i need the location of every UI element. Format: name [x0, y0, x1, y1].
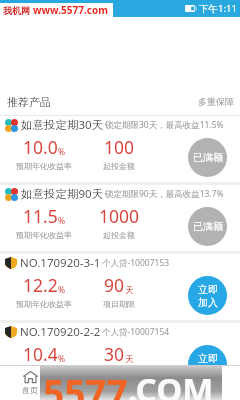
staticText: 天 — [125, 285, 134, 296]
staticText: 我的 — [202, 385, 218, 395]
staticText: 加入 — [198, 296, 218, 309]
staticText: 推荐产品 — [7, 95, 51, 109]
staticText: 发现 — [142, 385, 158, 395]
staticText: 如意投定期30天 — [21, 117, 104, 133]
staticText: 已满额 — [193, 151, 223, 164]
staticText: 10.4 — [23, 342, 58, 366]
staticText: 预期年化收益率 — [16, 368, 72, 378]
staticText: 个人贷-10007154 — [102, 326, 170, 338]
staticText: 100 — [104, 135, 135, 159]
staticText: 天 — [125, 354, 134, 365]
staticText: 预期年化收益率 — [16, 299, 72, 309]
button[interactable]: 立即加入 — [188, 345, 227, 384]
staticText: 项目期限 — [103, 299, 135, 309]
staticText: 锁定期限30天，最高收益11.5% — [105, 119, 224, 131]
staticText: www.5577.com — [33, 3, 108, 17]
staticText: 我机网 — [3, 5, 30, 16]
staticText: 锁定期限90天，最高收益13.7% — [105, 188, 224, 200]
staticText: 10.0 — [23, 135, 58, 159]
button[interactable]: 立即加入 — [188, 276, 227, 315]
staticText: NO.170920-3-1 — [20, 255, 101, 271]
staticText: % — [58, 146, 66, 158]
staticText: % — [58, 353, 66, 365]
staticText: 11.5 — [23, 204, 58, 228]
button[interactable]: 我的 — [180, 366, 240, 400]
button[interactable]: 如意投定期90天 — [0, 185, 240, 251]
staticText: 起投金额 — [103, 161, 135, 171]
staticText: % — [58, 215, 66, 227]
staticText: 预期年化收益率 — [16, 230, 72, 240]
staticText: 加入 — [198, 365, 218, 378]
button[interactable]: 首页 — [0, 366, 60, 400]
staticText: 项目期限 — [103, 368, 135, 378]
staticText: 预期年化收益率 — [16, 161, 72, 171]
staticText: NO.170920-2-2 — [20, 324, 101, 340]
staticText: 90 — [104, 273, 125, 297]
staticText: 多重保障 — [198, 96, 234, 107]
button[interactable]: 已满额 — [188, 138, 227, 177]
button[interactable]: 理财 — [60, 366, 120, 400]
staticText: .COM — [128, 367, 214, 400]
staticText: 立即 — [198, 352, 218, 365]
staticText: 5577 — [43, 367, 128, 400]
button[interactable]: 如意投定期30天 — [0, 116, 240, 182]
button[interactable]: 发现 — [120, 366, 180, 400]
staticText: 个人贷-10007153 — [102, 257, 170, 269]
staticText: 下午1:11 — [199, 2, 237, 15]
staticText: 30 — [104, 342, 125, 366]
staticText: 12.2 — [23, 273, 58, 297]
staticText: 如意投定期90天 — [21, 186, 104, 202]
staticText: 首页 — [22, 385, 38, 395]
staticText: 1000 — [99, 204, 140, 228]
staticText: 起投金额 — [103, 230, 135, 240]
staticText: 立即 — [198, 283, 218, 296]
staticText: 已满额 — [193, 220, 223, 233]
button[interactable]: NO.170920-3-1 — [0, 254, 240, 320]
staticText: 理财 — [82, 385, 98, 395]
staticText: % — [58, 284, 66, 296]
button[interactable]: NO.170920-2-2 — [0, 323, 240, 365]
button[interactable]: 推荐产品 — [0, 88, 240, 115]
button[interactable]: 已满额 — [188, 207, 227, 246]
